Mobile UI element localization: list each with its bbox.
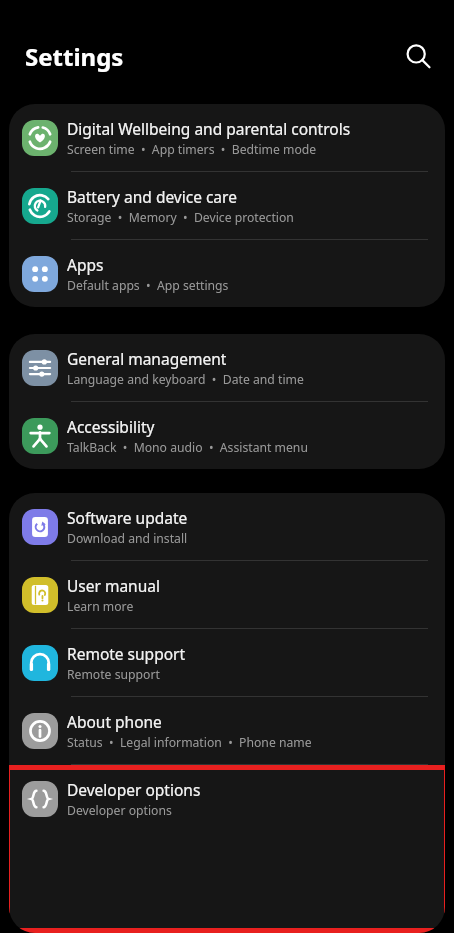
button[interactable]: Digital Wellbeing and parental controls	[9, 104, 445, 171]
button[interactable]: Battery and device care	[9, 172, 445, 239]
button[interactable]: Accessibility	[9, 402, 445, 469]
staticText: User manual	[67, 575, 160, 596]
staticText: Settings	[25, 40, 124, 73]
button[interactable]: Search	[396, 34, 440, 78]
button[interactable]: Software update	[9, 493, 445, 560]
button[interactable]: User manual	[9, 561, 445, 628]
staticText: Apps	[67, 254, 104, 275]
staticText: Battery and device care	[67, 186, 237, 207]
staticText: Screen time • App timers • Bedtime mode	[67, 141, 317, 158]
staticText: General management	[67, 348, 227, 369]
staticText: Digital Wellbeing and parental controls	[67, 118, 351, 139]
staticText: Default apps • App settings	[67, 277, 229, 294]
button[interactable]: General management	[9, 334, 445, 401]
staticText: TalkBack • Mono audio • Assistant menu	[67, 439, 308, 456]
staticText: Remote support	[67, 666, 160, 683]
staticText: Software update	[67, 507, 188, 528]
button[interactable]: About phone	[9, 697, 445, 764]
staticText: Remote support	[67, 643, 186, 664]
staticText: Storage • Memory • Device protection	[67, 209, 294, 226]
button[interactable]: Apps	[9, 240, 445, 307]
staticText: Learn more	[67, 598, 134, 615]
button[interactable]: Remote support	[9, 629, 445, 696]
staticText: Developer options	[67, 779, 201, 800]
staticText: Accessibility	[67, 416, 155, 437]
button[interactable]: Developer options	[9, 765, 445, 832]
staticText: Language and keyboard • Date and time	[67, 371, 304, 388]
staticText: Download and install	[67, 530, 188, 547]
staticText: Developer options	[67, 802, 172, 819]
staticText: Status • Legal information • Phone name	[67, 734, 312, 751]
staticText: About phone	[67, 711, 162, 732]
